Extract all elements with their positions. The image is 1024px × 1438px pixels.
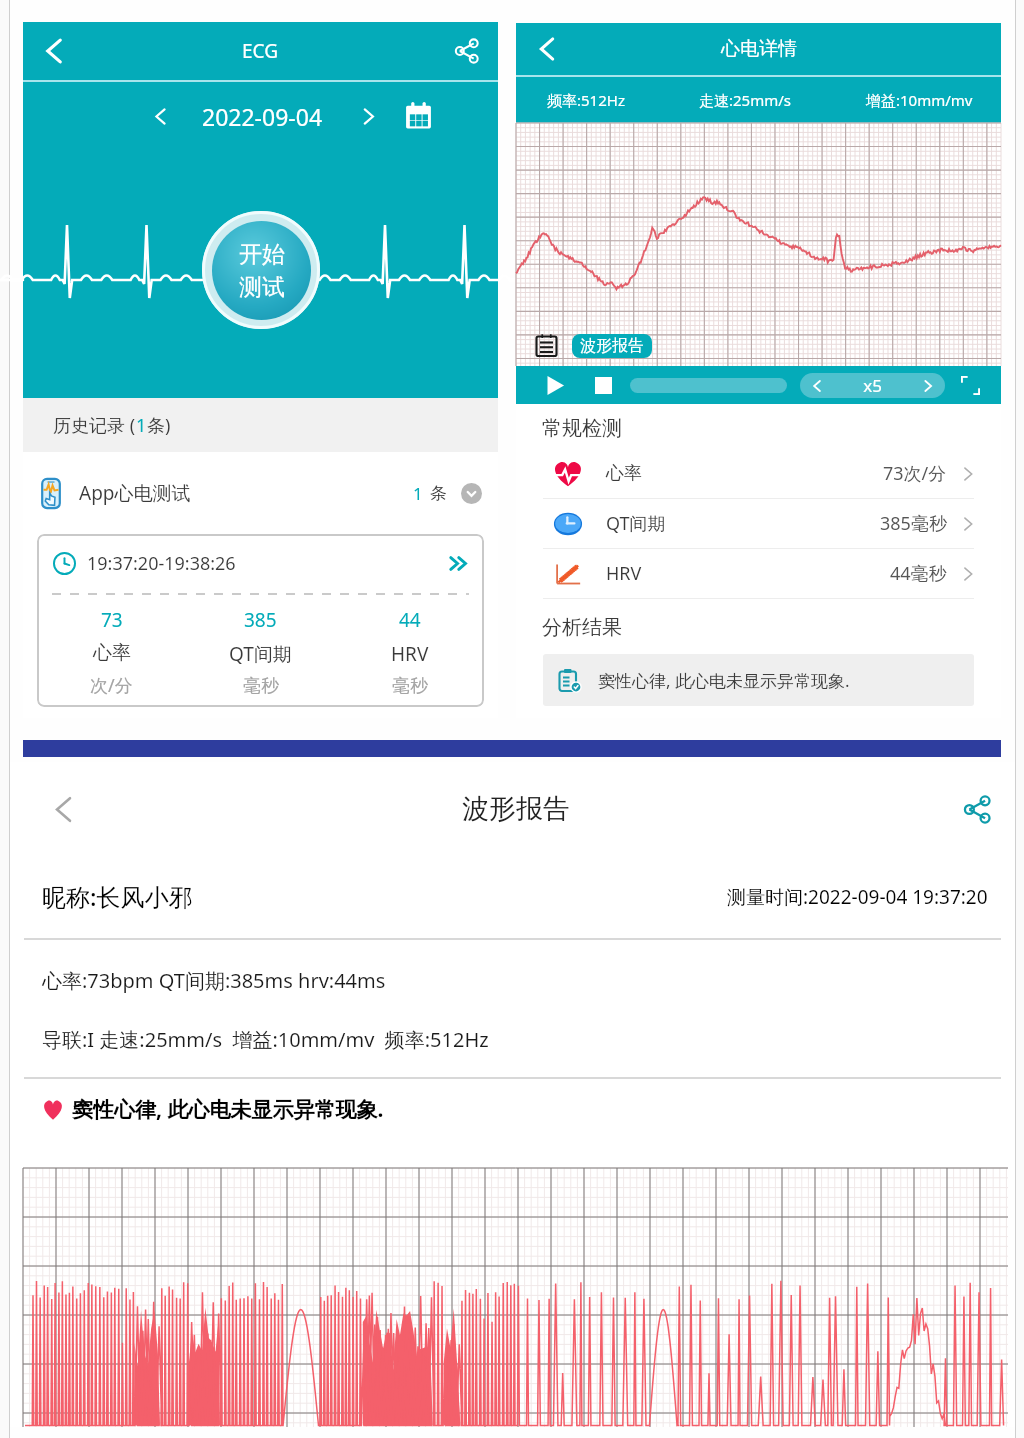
staticText: 窦性心律, 此心电未显示异常现象. (72, 1095, 384, 1124)
staticText: 19:37:20-19:38:26 (87, 551, 236, 576)
staticText: 历史记录 ( (53, 413, 136, 438)
staticText: 心电详情 (721, 37, 797, 61)
button[interactable] (630, 378, 787, 393)
staticText: 开始 (239, 240, 285, 269)
button[interactable]: 开始 (212, 221, 311, 320)
button[interactable]: Slower (800, 373, 834, 398)
staticText: 次/分 (90, 673, 133, 698)
staticText: 1 (413, 482, 423, 505)
staticText: 心率 (93, 641, 131, 665)
button[interactable]: Report list (534, 333, 559, 358)
button[interactable]: Next day (348, 96, 388, 136)
staticText: 分析结果 (542, 615, 622, 640)
button[interactable]: Faster (911, 373, 945, 398)
staticText: QT间期 (606, 511, 666, 536)
staticText: QT间期 (229, 641, 292, 667)
button[interactable]: Share (436, 22, 498, 80)
button[interactable]: HRV (516, 549, 1001, 598)
staticText: 增益:10mm/mv (866, 90, 973, 110)
staticText: 走速:25mm/s (699, 90, 791, 110)
staticText: 测试 (239, 273, 285, 302)
staticText: 窦性心律, 此心电未显示异常现象. (598, 669, 850, 692)
staticText: 条) (147, 413, 171, 438)
staticText: 44毫秒 (890, 561, 947, 586)
staticText: 385 (244, 607, 277, 633)
button[interactable]: Back (23, 22, 85, 80)
staticText: 毫秒 (392, 675, 428, 698)
button[interactable]: Previous day (140, 96, 180, 136)
staticText: 1 (136, 413, 147, 438)
staticText: 385毫秒 (880, 511, 947, 536)
staticText: App心电测试 (79, 480, 191, 506)
button[interactable]: Fullscreen (957, 372, 983, 398)
button[interactable]: Share (946, 778, 1008, 840)
staticText: 波形报告 (462, 792, 570, 826)
staticText: 频率:512Hz (547, 90, 625, 110)
button[interactable]: Back (32, 778, 94, 840)
staticText: 导联:I 走速:25mm/s 增益:10mm/mv 频率:512Hz (42, 1026, 489, 1053)
button[interactable]: 19:37:20-19:38:26 (37, 534, 484, 707)
button[interactable]: App心电测试 (23, 452, 498, 534)
staticText: 44 (399, 607, 421, 633)
button[interactable]: 心率 (516, 449, 1001, 498)
button[interactable]: Stop (590, 372, 616, 398)
staticText: 条 (430, 483, 447, 504)
staticText: 常规检测 (542, 416, 622, 441)
staticText: 心率:73bpm QT间期:385ms hrv:44ms (42, 967, 386, 994)
staticText: 毫秒 (243, 675, 279, 698)
button[interactable]: Calendar (397, 95, 439, 137)
staticText: 心率 (606, 462, 642, 485)
staticText: HRV (391, 641, 429, 667)
button[interactable]: Back (516, 23, 578, 75)
staticText: 73次/分 (883, 461, 947, 486)
staticText: ECG (242, 38, 279, 64)
staticText: HRV (606, 561, 642, 586)
staticText: 2022-09-04 (202, 101, 323, 132)
staticText: 昵称:长风小邪 (42, 880, 193, 913)
staticText: 73 (101, 607, 123, 633)
staticText: 测量时间:2022-09-04 19:37:20 (727, 884, 988, 910)
staticText: x5 (834, 374, 911, 397)
button[interactable]: 波形报告 (572, 334, 652, 358)
button[interactable]: 窦性心律, 此心电未显示异常现象. (543, 654, 974, 706)
button[interactable]: Play (542, 372, 568, 398)
staticText: 波形报告 (580, 336, 644, 356)
button[interactable]: QT间期 (516, 499, 1001, 548)
